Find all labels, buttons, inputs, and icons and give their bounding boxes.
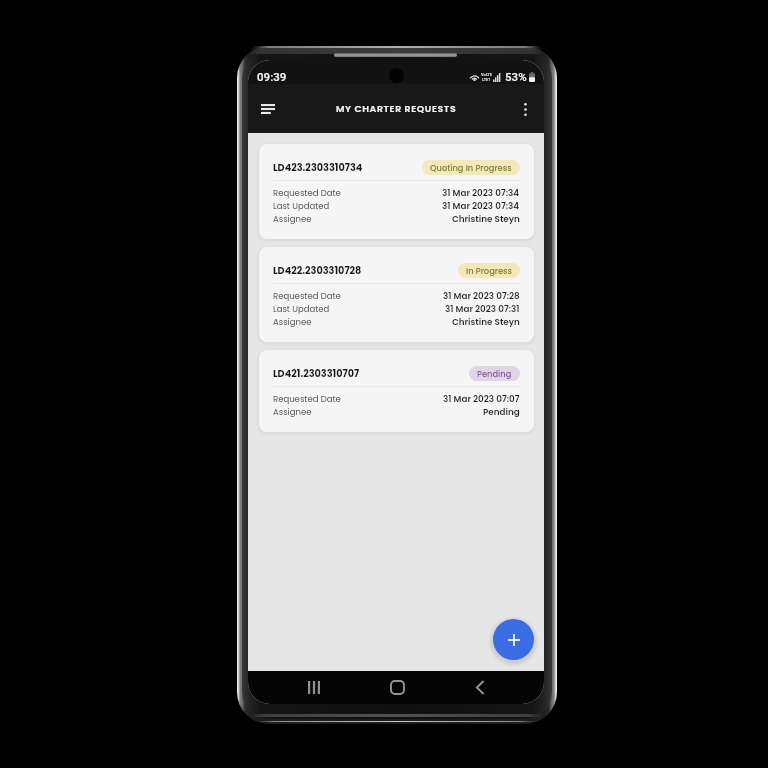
staticText: VoLTE — [481, 72, 492, 77]
button[interactable]: LD423.2303310734 — [259, 144, 534, 239]
staticText: Assignee — [273, 406, 312, 418]
staticText: 31 Mar 2023 07:34 — [442, 187, 520, 199]
staticText: Pending — [483, 406, 520, 418]
staticText: Quoting In Progress — [430, 162, 512, 174]
staticText: 09:39 — [257, 70, 287, 84]
staticText: MY CHARTER REQUESTS — [336, 102, 457, 115]
button[interactable]: Home — [377, 671, 417, 704]
staticText: 31 Mar 2023 07:34 — [442, 200, 520, 212]
staticText: LD421.2303310707 — [273, 367, 360, 381]
staticText: 53% — [505, 70, 527, 84]
staticText: Assignee — [273, 213, 312, 225]
staticText: LD422.2303310728 — [273, 264, 362, 278]
staticText: Requested Date — [273, 290, 341, 302]
button[interactable]: LD421.2303310707 — [259, 350, 534, 432]
staticText: LTE1 — [482, 77, 491, 82]
staticText: 31 Mar 2023 07:07 — [443, 393, 520, 405]
staticText: Requested Date — [273, 187, 341, 199]
staticText: Last Updated — [273, 200, 330, 212]
staticText: LD423.2303310734 — [273, 161, 363, 175]
staticText: Last Updated — [273, 303, 330, 315]
button[interactable]: Recent apps — [294, 671, 334, 704]
button[interactable]: Open navigation menu — [250, 91, 285, 126]
staticText: 31 Mar 2023 07:31 — [445, 303, 520, 315]
staticText: Assignee — [273, 316, 312, 328]
button[interactable]: Back — [460, 671, 500, 704]
staticText: 31 Mar 2023 07:28 — [443, 290, 520, 302]
staticText: Christine Steyn — [452, 316, 520, 328]
staticText: Pending — [477, 368, 512, 380]
staticText: Christine Steyn — [452, 213, 520, 225]
staticText: In Progress — [466, 265, 512, 277]
button[interactable]: Add charter request — [493, 619, 534, 660]
button[interactable]: More options — [509, 93, 541, 125]
button[interactable]: LD422.2303310728 — [259, 247, 534, 342]
staticText: Requested Date — [273, 393, 341, 405]
